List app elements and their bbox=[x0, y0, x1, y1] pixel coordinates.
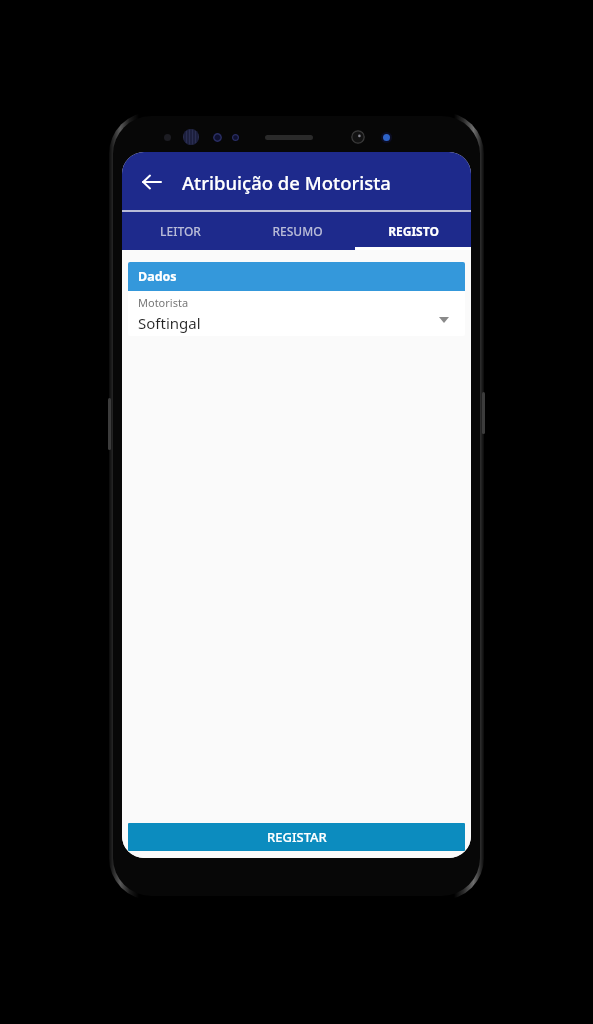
button[interactable]: LEITOR bbox=[122, 212, 239, 250]
staticText: Dados bbox=[138, 268, 177, 285]
button[interactable]: REGISTO bbox=[355, 212, 471, 250]
button[interactable]: Motorista bbox=[128, 291, 465, 336]
staticText: RESUMO bbox=[272, 223, 323, 239]
staticText: LEITOR bbox=[160, 223, 201, 239]
staticText: REGISTAR bbox=[267, 828, 327, 846]
staticText: Softingal bbox=[138, 313, 201, 333]
staticText: Motorista bbox=[138, 295, 189, 310]
staticText: REGISTO bbox=[388, 223, 439, 239]
button[interactable]: Back bbox=[130, 160, 174, 204]
button[interactable]: REGISTAR bbox=[128, 823, 465, 851]
staticText: Atribuição de Motorista bbox=[182, 170, 391, 195]
button[interactable]: RESUMO bbox=[239, 212, 355, 250]
